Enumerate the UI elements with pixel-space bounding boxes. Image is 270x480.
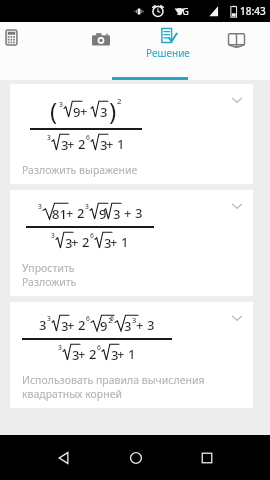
staticText: 3 [51, 231, 55, 240]
staticText: ) [109, 94, 117, 127]
staticText: Упростить [22, 261, 75, 275]
button[interactable]: Home [128, 450, 144, 466]
staticText: 3 [100, 103, 108, 121]
staticText: 9 [73, 103, 81, 121]
staticText: Разложить [22, 275, 77, 289]
staticText: ( [50, 94, 58, 127]
staticText: 3 [47, 314, 51, 323]
staticText: 81 [52, 205, 67, 223]
staticText: 6 [110, 314, 114, 323]
staticText: 3 [61, 136, 69, 154]
staticText: 2 [78, 135, 86, 153]
button[interactable]: Expand [230, 199, 244, 213]
staticText: Использовать правила вычисления [22, 373, 205, 387]
staticText: 6 [86, 314, 90, 323]
staticText: 9 [99, 205, 107, 223]
button[interactable]: Expand [230, 93, 244, 107]
staticText: 3 [111, 346, 119, 364]
staticText: + [80, 102, 88, 120]
staticText: + [106, 135, 114, 153]
staticText: 2 [78, 316, 86, 334]
staticText: квадратных корней [22, 387, 122, 401]
staticText: + [66, 204, 74, 222]
staticText: + [71, 233, 79, 251]
staticText: 9 [100, 317, 108, 335]
button[interactable]: Recents [200, 451, 214, 465]
staticText: + [124, 204, 132, 222]
staticText: 3 [100, 136, 108, 154]
staticText: 3 [58, 343, 62, 352]
staticText: + [67, 135, 75, 153]
button[interactable]: Back [56, 450, 72, 466]
staticText: 3 [39, 316, 47, 334]
staticText: 2 [82, 233, 90, 251]
button[interactable]: 3 [10, 302, 253, 408]
staticText: + [110, 233, 118, 251]
staticText: 2 [89, 345, 97, 363]
staticText: 6 [86, 133, 90, 142]
staticText: 6 [90, 231, 94, 240]
staticText: 3 [47, 133, 51, 142]
staticText: 3 [72, 346, 80, 364]
button[interactable]: Camera [67, 22, 134, 80]
staticText: 2 [108, 315, 113, 325]
staticText: 1 [117, 135, 125, 153]
button[interactable]: ( [10, 84, 253, 184]
button[interactable]: Expand [230, 311, 244, 325]
staticText: 3 [59, 100, 63, 109]
staticText: + [117, 345, 125, 363]
staticText: + [67, 316, 75, 334]
staticText: 1 [128, 345, 136, 363]
staticText: 3 [147, 316, 155, 334]
staticText: 3 [135, 204, 143, 222]
staticText: 6 [97, 343, 101, 352]
staticText: 3 [65, 234, 73, 252]
staticText: 3 [124, 317, 132, 335]
button[interactable]: 3 [10, 190, 253, 296]
staticText: 3 [104, 234, 112, 252]
staticText: 3 [61, 317, 69, 335]
staticText: Решение [146, 46, 190, 60]
staticText: + [136, 316, 144, 334]
staticText: Разложить выражение [22, 163, 138, 177]
staticText: 3G [177, 5, 189, 17]
button[interactable]: Calculator [0, 22, 67, 80]
staticText: + [78, 345, 86, 363]
staticText: 3 [113, 205, 121, 223]
button[interactable]: Решение [134, 22, 202, 80]
button[interactable]: Glossary [202, 22, 270, 80]
staticText: 2 [117, 96, 122, 107]
staticText: 3 [132, 315, 137, 325]
staticText: 3 [85, 202, 89, 211]
staticText: 18:43 [240, 4, 266, 18]
staticText: 2 [77, 204, 85, 222]
staticText: 1 [121, 233, 129, 251]
staticText: 3 [38, 202, 42, 211]
